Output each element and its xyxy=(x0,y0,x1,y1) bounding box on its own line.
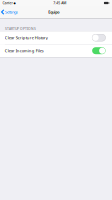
staticText: Clear Incoming Files xyxy=(5,48,44,53)
button[interactable]: Clear Incoming Files xyxy=(0,44,112,57)
staticText: STARTUP OPTIONS xyxy=(5,26,36,31)
staticText: Settings xyxy=(5,9,18,15)
staticText: 7:45 AM xyxy=(53,1,66,5)
staticText: Clear Scripture History xyxy=(5,35,48,40)
staticText: ● xyxy=(13,1,15,4)
button[interactable]: Clear Scripture History xyxy=(0,31,112,44)
staticText: Carrier xyxy=(2,1,12,5)
staticText: Equipo xyxy=(48,9,59,15)
button[interactable]: Settings xyxy=(0,6,21,18)
